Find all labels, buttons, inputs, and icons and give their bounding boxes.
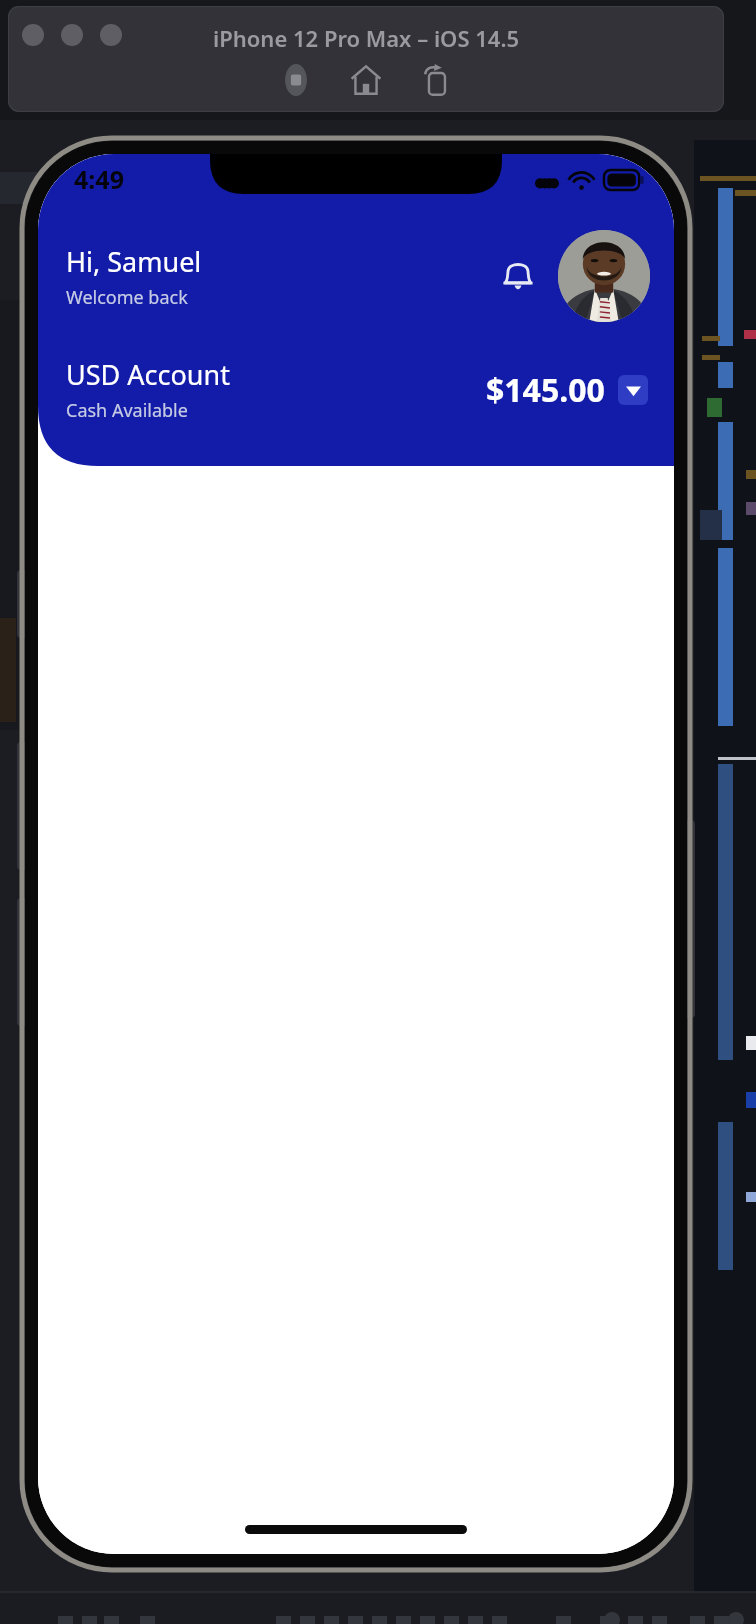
button[interactable]: Home <box>346 60 386 100</box>
staticText: 4:49 <box>74 162 124 196</box>
staticText: Hi, Samuel <box>66 243 202 280</box>
staticText: iPhone 12 Pro Max – iOS 14.5 <box>213 23 520 53</box>
staticText: $145.00 <box>486 368 605 412</box>
button[interactable]: Rotate <box>416 60 456 100</box>
button[interactable]: Profile <box>558 230 650 322</box>
staticText: Cash Available <box>66 398 188 423</box>
button[interactable]: Window control <box>22 24 44 46</box>
button[interactable]: Notifications <box>490 248 546 304</box>
staticText: Welcome back <box>66 285 188 310</box>
staticText: USD Account <box>66 356 230 393</box>
button[interactable]: Screenshot <box>276 60 316 100</box>
button[interactable]: Window control <box>61 24 83 46</box>
button[interactable]: $145.00 <box>486 368 648 412</box>
button[interactable]: Window control <box>100 24 122 46</box>
